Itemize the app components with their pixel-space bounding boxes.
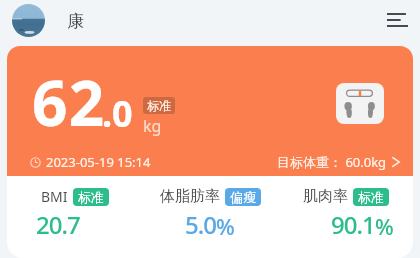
staticText: 目标体重： 60.0kg (277, 153, 387, 171)
button[interactable]: 目标体重： 60.0kg (277, 153, 401, 171)
staticText: 标准 (358, 189, 384, 205)
button[interactable]: Scale (336, 83, 384, 124)
staticText: % (216, 211, 234, 241)
staticText: 肌肉率 (303, 187, 348, 206)
button[interactable]: Profile (12, 4, 45, 37)
button[interactable]: 体脂肪率 (160, 187, 261, 241)
button[interactable]: Menu (383, 9, 411, 37)
button[interactable]: BMI (41, 187, 109, 241)
staticText: 标准 (78, 189, 104, 205)
staticText: 90.1 (331, 208, 375, 241)
staticText: BMI (41, 187, 68, 206)
staticText: 康 (67, 11, 84, 32)
button[interactable]: 肌肉率 (303, 187, 389, 241)
staticText: .0 (102, 89, 133, 138)
staticText: 2023-05-19 15:14 (46, 153, 151, 171)
staticText: 62 (32, 60, 106, 144)
staticText: % (375, 211, 393, 241)
staticText: 5.0 (185, 208, 216, 241)
staticText: 体脂肪率 (160, 187, 220, 206)
staticText: 偏瘦 (230, 189, 256, 205)
staticText: kg (143, 115, 162, 137)
staticText: 标准 (147, 98, 171, 113)
staticText: 20.7 (36, 208, 80, 241)
